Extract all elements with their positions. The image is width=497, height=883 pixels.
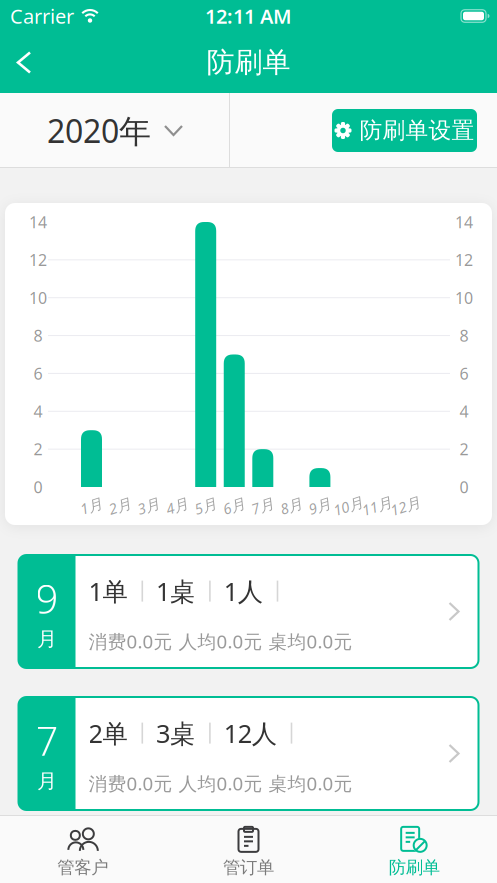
staticText: 防刷单 (389, 857, 440, 878)
staticText: 12 (455, 249, 473, 270)
staticText: 6 (33, 363, 42, 384)
staticText: 7 (35, 714, 58, 767)
staticText: 3桌 (156, 716, 195, 750)
button[interactable]: 2020年 (0, 93, 229, 167)
staticText: 10 (455, 287, 473, 308)
button[interactable]: 防刷单设置 (332, 109, 477, 152)
staticText: 管客户 (57, 857, 108, 878)
staticText: 管订单 (223, 857, 274, 878)
staticText: 2020年 (47, 109, 151, 152)
staticText: 8月 (280, 496, 303, 516)
staticText: 12人 (224, 716, 277, 750)
staticText: 4 (459, 401, 468, 422)
staticText: 14 (29, 211, 47, 233)
staticText: 4月 (166, 496, 189, 516)
staticText: 8 (459, 325, 468, 346)
staticText: 1月 (80, 496, 103, 516)
staticText: 5月 (194, 496, 217, 516)
staticText: 月 (37, 769, 57, 793)
staticText: 10月 (333, 496, 364, 516)
button[interactable] (0, 32, 46, 93)
staticText: 2单 (88, 716, 127, 750)
staticText: 6月 (223, 496, 246, 516)
staticText: 0 (33, 476, 42, 498)
staticText: 月 (37, 627, 57, 651)
button[interactable]: 9 (18, 555, 478, 668)
staticText: 2 (459, 438, 468, 460)
staticText: 8 (33, 325, 42, 346)
staticText: 7月 (251, 496, 274, 516)
staticText: 11月 (361, 496, 392, 516)
staticText: 3月 (137, 496, 160, 516)
staticText: 4 (33, 401, 42, 422)
staticText: 1单 (88, 574, 127, 608)
button[interactable]: 防刷单 (331, 822, 497, 882)
staticText: 1人 (224, 574, 263, 608)
staticText: 2月 (108, 496, 131, 516)
staticText: 防刷单 (206, 45, 290, 80)
staticText: 6 (459, 363, 468, 384)
staticText: 14 (455, 211, 473, 233)
button[interactable]: 管订单 (166, 822, 331, 882)
staticText: 9月 (308, 496, 331, 516)
staticText: 12月 (390, 496, 421, 516)
staticText: 2 (33, 438, 42, 460)
staticText: Carrier (10, 3, 74, 29)
staticText: 消费0.0元 人均0.0元 桌均0.0元 (88, 629, 352, 654)
staticText: 10 (29, 287, 47, 308)
staticText: 防刷单设置 (359, 117, 474, 144)
button[interactable]: 管客户 (0, 822, 166, 882)
staticText: 1桌 (156, 574, 195, 608)
staticText: 12 (29, 249, 47, 270)
staticText: 消费0.0元 人均0.0元 桌均0.0元 (88, 771, 352, 796)
staticText: 12:11 AM (205, 3, 292, 29)
staticText: 9 (35, 572, 58, 625)
staticText: 0 (459, 476, 468, 498)
button[interactable]: 7 (18, 697, 478, 810)
